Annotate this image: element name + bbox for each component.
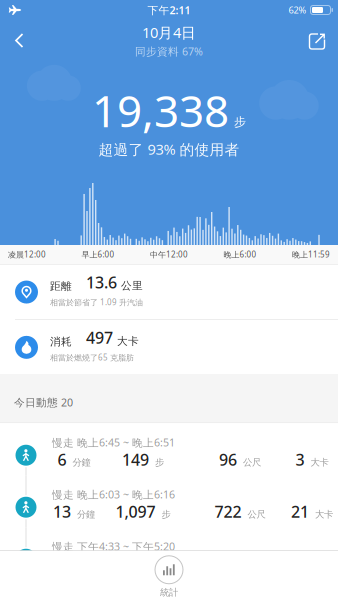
staticText: 同步資料 67% <box>135 44 203 58</box>
staticText: 慢走 晚上6:03 ~ 晚上6:16 <box>52 487 175 501</box>
staticText: 10月4日 <box>142 23 196 42</box>
staticText: 公里 <box>121 279 143 292</box>
button[interactable]: 分享 <box>299 20 338 60</box>
staticText: 722 <box>214 501 241 522</box>
staticText: 19,338 <box>92 81 229 139</box>
staticText: 今日動態 20 <box>14 395 73 409</box>
staticText: 步 <box>161 509 170 520</box>
staticText: 13.6 <box>86 272 117 293</box>
staticText: 消耗 <box>50 335 72 348</box>
staticText: 分鐘 <box>77 509 95 520</box>
staticText: 相當於燃燒了65 克脂肪 <box>50 352 134 363</box>
staticText: 超過了 93% 的使用者 <box>98 139 239 159</box>
staticText: 13 <box>53 501 71 522</box>
staticText: 1,097 <box>115 501 155 522</box>
staticText: 相當於節省了 1.09 升汽油 <box>50 297 143 307</box>
staticText: 分鐘 <box>72 457 90 468</box>
staticText: 中午12:00 <box>150 249 188 260</box>
staticText: 大卡 <box>315 509 333 520</box>
staticText: 早上6:00 <box>81 249 114 260</box>
staticText: 149 <box>122 449 149 470</box>
staticText: 步 <box>234 115 246 129</box>
staticText: 公尺 <box>243 457 261 468</box>
staticText: 62% <box>288 4 306 16</box>
staticText: 步 <box>161 561 170 572</box>
staticText: 距離 <box>50 280 72 293</box>
staticText: 96 <box>219 449 237 470</box>
staticText: 步 <box>155 457 164 468</box>
staticText: 公尺 <box>247 509 265 520</box>
staticText: 大卡 <box>117 335 139 348</box>
staticText: 2,480 <box>115 553 155 574</box>
staticText: 21 <box>291 501 309 522</box>
staticText: 3 <box>295 449 304 470</box>
staticText: 大卡 <box>310 457 328 468</box>
staticText: 統計 <box>160 587 178 598</box>
staticText: 下午2:11 <box>147 3 190 17</box>
staticText: 慢走 晚上6:45 ~ 晚上6:51 <box>52 435 175 449</box>
staticText: 慢走 下午4:33 ~ 下午5:20 <box>52 539 175 553</box>
button[interactable]: 返回 <box>0 20 34 60</box>
staticText: 晚上6:00 <box>223 249 256 260</box>
staticText: 晚上11:59 <box>292 249 330 260</box>
staticText: 497 <box>86 327 113 348</box>
button[interactable]: 統計 <box>0 551 338 600</box>
staticText: 凌晨12:00 <box>8 249 46 260</box>
staticText: 6 <box>57 449 66 470</box>
